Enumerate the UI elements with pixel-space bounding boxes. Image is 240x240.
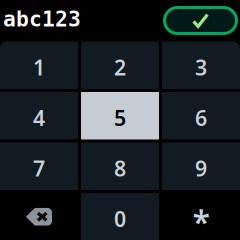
button[interactable]: 1 (0, 41, 78, 89)
staticText: 4 (33, 104, 45, 132)
staticText: 0 (114, 205, 126, 233)
button[interactable]: Done (163, 6, 238, 35)
button[interactable]: 7 (0, 142, 78, 190)
button[interactable]: 3 (162, 41, 240, 89)
button[interactable]: 2 (81, 41, 159, 89)
staticText: abc123 (3, 7, 81, 31)
staticText: 2 (114, 53, 126, 81)
staticText: 9 (195, 154, 207, 182)
staticText: 7 (33, 154, 45, 182)
staticText: 8 (114, 154, 126, 182)
button[interactable]: * (162, 193, 240, 240)
button[interactable]: 9 (162, 142, 240, 190)
button[interactable]: 0 (81, 193, 159, 240)
staticText: 3 (195, 53, 207, 81)
staticText: * (192, 200, 209, 240)
button[interactable]: 5 (81, 92, 159, 139)
staticText: 6 (195, 104, 207, 132)
staticText: 5 (114, 104, 126, 132)
button[interactable]: 8 (81, 142, 159, 190)
button[interactable]: 4 (0, 92, 78, 139)
button[interactable]: Delete (0, 193, 78, 240)
staticText: 1 (33, 53, 45, 81)
button[interactable]: 6 (162, 92, 240, 139)
